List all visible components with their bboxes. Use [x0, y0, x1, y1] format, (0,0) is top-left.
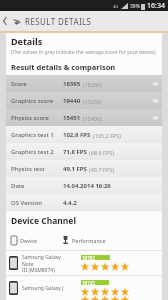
staticText: Graphics test 2: [11, 148, 54, 156]
staticText: (49.7 FPS): [89, 166, 114, 173]
staticText: Device: [20, 237, 37, 244]
staticText: Date: [11, 182, 25, 190]
staticText: 18762: [82, 255, 95, 260]
staticText: (68.6 FPS): [89, 149, 114, 156]
staticText: Graphics score: [11, 97, 54, 105]
staticText: (19250): [83, 98, 103, 105]
button[interactable]: OS Version: [6, 194, 162, 211]
staticText: Device Channel: [11, 215, 76, 227]
staticText: Samsung Galaxy J: [22, 285, 64, 292]
staticText: Score: [11, 80, 27, 88]
staticText: (105.2 FPS): [93, 132, 121, 139]
button[interactable]: Samsung Galaxy Note III (MSM8974): [6, 251, 162, 275]
button[interactable]: Score: [6, 75, 162, 92]
button[interactable]: Samsung Galaxy J: [6, 276, 162, 300]
staticText: 16:34: [147, 1, 165, 11]
staticText: Details: [11, 35, 43, 47]
staticText: Physics test: [11, 165, 45, 173]
staticText: (15400): [83, 115, 103, 122]
staticText: 18395: [63, 80, 81, 88]
staticText: 14.04.2014 16:26: [63, 182, 111, 190]
button[interactable]: Graphics test 1: [6, 126, 162, 143]
staticText: 4G: [113, 4, 119, 9]
button[interactable]: Physics score: [6, 109, 162, 126]
staticText: Result details & comparison: [11, 62, 116, 72]
staticText: OS Version: [11, 199, 43, 207]
button[interactable]: Back: [0, 11, 10, 31]
button[interactable]: Graphics score: [6, 92, 162, 109]
button[interactable]: Date: [6, 177, 162, 194]
staticText: Physics score: [11, 114, 49, 122]
staticText: 102,8 FPS: [63, 131, 91, 139]
staticText: Performance: [72, 237, 106, 244]
staticText: 49,1 FPS: [63, 165, 87, 173]
staticText: 19440: [63, 97, 81, 105]
staticText: Graphics test 1: [11, 131, 54, 139]
button[interactable]: Physics test: [6, 160, 162, 177]
staticText: (18200): [83, 81, 103, 88]
staticText: RESULT DETAILS: [25, 16, 92, 27]
staticText: 4.4.2: [63, 199, 77, 207]
staticText: 18720: [82, 280, 95, 285]
button[interactable]: Graphics test 2: [6, 143, 162, 160]
staticText: (The values in grey indicate the average…: [11, 49, 156, 56]
staticText: 39%: [130, 3, 140, 10]
staticText: Samsung Galaxy Note III (MSM8974): [22, 254, 70, 273]
staticText: 15451: [63, 114, 81, 122]
staticText: 71,8 FPS: [63, 148, 87, 156]
